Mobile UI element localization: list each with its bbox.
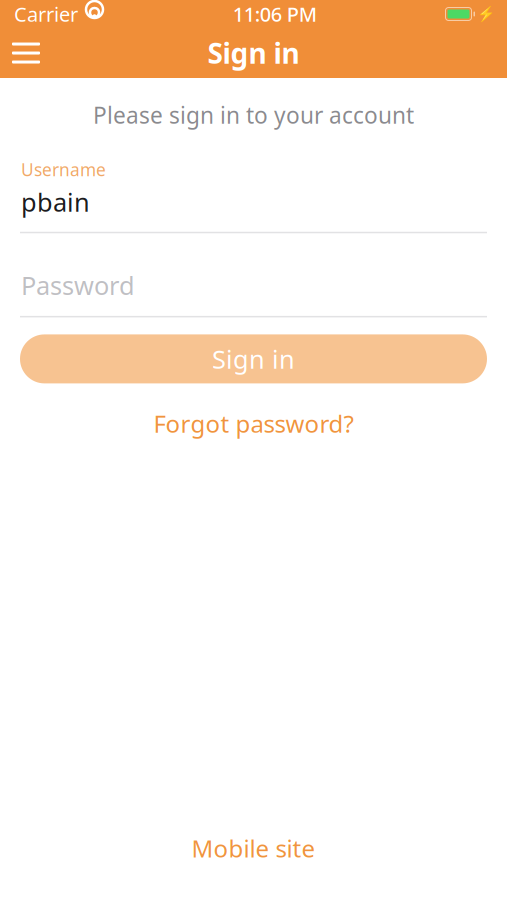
staticText: ⚡ — [477, 6, 495, 22]
button[interactable]: Menu — [0, 28, 52, 78]
staticText: 11:06 PM — [233, 1, 317, 27]
staticText: Sign in — [212, 342, 295, 376]
staticText: Username — [21, 158, 106, 181]
staticText: Forgot password? — [153, 407, 353, 439]
button[interactable]: Mobile site — [171, 822, 335, 874]
staticText: pbain — [21, 185, 90, 219]
staticText: Sign in — [207, 34, 299, 72]
staticText: Password — [21, 268, 135, 302]
button[interactable]: Forgot password? — [135, 398, 371, 448]
staticText: Carrier — [14, 1, 78, 27]
button[interactable]: Sign in — [20, 334, 487, 383]
staticText: Mobile site — [191, 832, 315, 864]
staticText: Please sign in to your account — [93, 100, 414, 130]
